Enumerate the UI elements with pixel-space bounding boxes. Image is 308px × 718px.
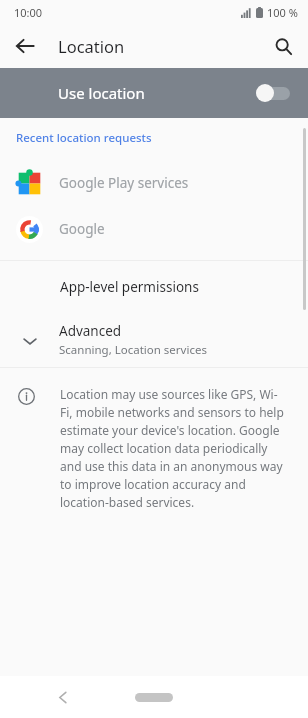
- staticText: 10:00: [14, 5, 43, 20]
- staticText: Scanning, Location services: [59, 342, 207, 358]
- staticText: Google: [59, 220, 105, 238]
- button[interactable]: Use location: [0, 68, 308, 118]
- staticText: 100 %: [267, 5, 298, 20]
- staticText: Google Play services: [59, 174, 189, 192]
- staticText: Advanced: [59, 322, 122, 340]
- button[interactable]: Home: [135, 693, 173, 702]
- button[interactable]: Search: [266, 29, 300, 63]
- button[interactable]: Back: [8, 29, 42, 63]
- button[interactable]: App-level permissions: [0, 261, 308, 313]
- staticText: Location: [58, 35, 125, 57]
- staticText: Recent location requests: [16, 130, 152, 146]
- staticText: Location may use sources like GPS, Wi-Fi…: [60, 386, 286, 510]
- staticText: App-level permissions: [60, 278, 199, 296]
- button[interactable]: Advanced: [0, 313, 308, 367]
- button[interactable]: Back: [48, 682, 78, 712]
- button[interactable]: Google: [0, 206, 308, 252]
- staticText: Use location: [58, 83, 256, 103]
- button[interactable]: Google Play services: [0, 160, 308, 206]
